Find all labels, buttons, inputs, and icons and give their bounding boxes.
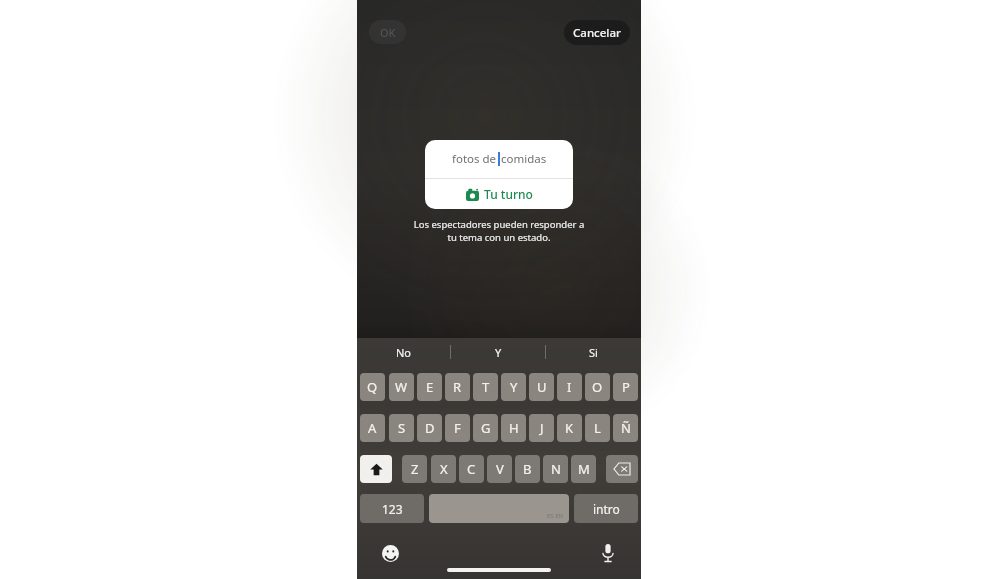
button[interactable]: F: [445, 414, 470, 442]
button[interactable]: O: [585, 373, 610, 401]
button[interactable]: I: [557, 373, 582, 401]
button[interactable]: Ñ: [613, 414, 638, 442]
button[interactable]: U: [529, 373, 554, 401]
staticText: intro: [593, 501, 620, 517]
staticText: E: [426, 378, 434, 396]
staticText: R: [453, 378, 462, 396]
button[interactable]: Emoji: [377, 540, 403, 566]
staticText: O: [592, 378, 603, 396]
staticText: Q: [367, 378, 378, 396]
button[interactable]: K: [557, 414, 582, 442]
button[interactable]: Y: [501, 373, 526, 401]
staticText: ES EN: [547, 512, 564, 520]
button[interactable]: V: [487, 455, 512, 483]
button[interactable]: Cancelar: [564, 20, 630, 45]
button[interactable]: Tu turno: [425, 179, 573, 209]
staticText: M: [578, 460, 590, 478]
button[interactable]: Y: [451, 338, 546, 366]
button[interactable]: J: [529, 414, 554, 442]
staticText: T: [482, 378, 490, 396]
staticText: Ñ: [621, 419, 631, 437]
staticText: OK: [380, 25, 396, 40]
button[interactable]: No: [357, 338, 451, 366]
staticText: V: [496, 460, 504, 478]
staticText: 123: [382, 501, 403, 517]
staticText: D: [425, 419, 435, 437]
button[interactable]: OK: [369, 20, 406, 44]
staticText: N: [551, 460, 561, 478]
staticText: H: [509, 419, 519, 437]
staticText: S: [398, 419, 406, 437]
staticText: Z: [411, 460, 419, 478]
button[interactable]: L: [585, 414, 610, 442]
staticText: P: [622, 378, 630, 396]
staticText: fotos de: [452, 151, 497, 167]
staticText: Cancelar: [573, 25, 621, 41]
button[interactable]: H: [501, 414, 526, 442]
button[interactable]: N: [543, 455, 568, 483]
staticText: Y: [510, 378, 518, 396]
staticText: B: [523, 460, 532, 478]
button[interactable]: R: [445, 373, 470, 401]
button[interactable]: Z: [402, 455, 427, 483]
button[interactable]: G: [473, 414, 498, 442]
staticText: L: [594, 419, 601, 437]
staticText: G: [481, 419, 491, 437]
staticText: K: [565, 419, 574, 437]
staticText: Si: [589, 345, 598, 360]
button[interactable]: W: [389, 373, 414, 401]
button[interactable]: X: [431, 455, 456, 483]
staticText: Los espectadores pueden responder a tu t…: [399, 218, 599, 244]
button[interactable]: P: [613, 373, 638, 401]
staticText: U: [537, 378, 547, 396]
staticText: J: [540, 419, 544, 437]
staticText: F: [454, 419, 461, 437]
staticText: No: [396, 345, 412, 360]
button[interactable]: fotos de: [425, 140, 573, 178]
button[interactable]: 123: [360, 494, 424, 523]
button[interactable]: Space: [429, 494, 569, 523]
staticText: Y: [495, 345, 502, 360]
button[interactable]: M: [571, 455, 596, 483]
staticText: X: [440, 460, 448, 478]
button[interactable]: T: [473, 373, 498, 401]
staticText: comidas: [501, 151, 547, 167]
button[interactable]: Si: [546, 338, 641, 366]
button[interactable]: E: [417, 373, 442, 401]
staticText: A: [368, 419, 377, 437]
button[interactable]: Backspace: [606, 455, 638, 483]
button[interactable]: Q: [360, 373, 385, 401]
button[interactable]: intro: [574, 494, 638, 523]
staticText: C: [467, 460, 476, 478]
staticText: I: [567, 378, 572, 396]
staticText: Tu turno: [484, 186, 533, 202]
button[interactable]: C: [459, 455, 484, 483]
button[interactable]: B: [515, 455, 540, 483]
button[interactable]: A: [360, 414, 385, 442]
staticText: W: [395, 378, 408, 396]
button[interactable]: S: [389, 414, 414, 442]
button[interactable]: D: [417, 414, 442, 442]
button[interactable]: Voice input: [595, 540, 621, 566]
button[interactable]: Shift: [360, 455, 392, 483]
